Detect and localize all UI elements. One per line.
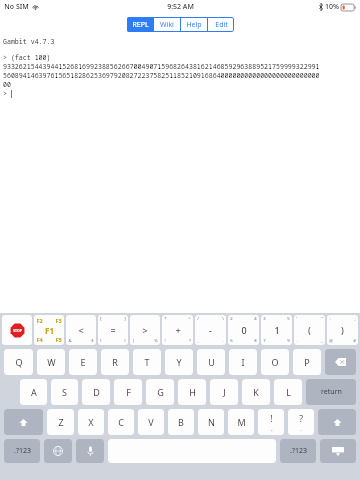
staticText: > (fact 100) [3, 53, 51, 62]
staticText: K [253, 386, 259, 398]
button[interactable]: * [162, 315, 193, 345]
button[interactable]: Z [47, 409, 74, 435]
staticText: L [286, 386, 291, 398]
button[interactable]: Backspace [325, 349, 356, 375]
staticText: ) [341, 324, 344, 336]
button[interactable]: 2 [228, 315, 259, 345]
button[interactable]: ' [294, 315, 325, 345]
staticText: ( [308, 324, 311, 336]
button[interactable]: | [130, 315, 160, 345]
button[interactable]: Wiki [154, 17, 180, 32]
button[interactable]: W [37, 349, 65, 375]
staticText: - [209, 324, 212, 336]
staticText: 6 [230, 338, 233, 344]
button[interactable]: M [228, 409, 254, 435]
button[interactable]: return [306, 379, 356, 405]
staticText: 5 [287, 316, 290, 322]
button[interactable]: H [178, 379, 206, 405]
staticText: " [321, 316, 323, 322]
staticText: ; [354, 316, 356, 322]
staticText: _ [321, 338, 323, 344]
button[interactable]: Function keys [34, 315, 64, 345]
button[interactable]: J [210, 379, 238, 405]
button[interactable]: Edit [208, 17, 234, 32]
staticText: ! [270, 413, 273, 425]
button[interactable]: N [198, 409, 224, 435]
staticText: E [80, 356, 86, 368]
button[interactable]: B [168, 409, 194, 435]
button[interactable]: [ [98, 315, 128, 345]
staticText: | [132, 338, 135, 344]
button[interactable]: C [108, 409, 134, 435]
button[interactable]: T [133, 349, 161, 375]
button[interactable]: G [146, 379, 174, 405]
staticText: & [68, 338, 72, 344]
button[interactable]: O [261, 349, 289, 375]
staticText: F3 [55, 317, 62, 324]
staticText: Help [186, 20, 202, 30]
staticText: > [3, 89, 11, 98]
staticText: ? [299, 413, 303, 425]
button[interactable]: K [242, 379, 270, 405]
button[interactable]: REPL [127, 17, 153, 32]
staticText: 0 [241, 324, 247, 336]
staticText: N [208, 416, 215, 428]
button[interactable]: Shift [4, 409, 43, 435]
button[interactable]: Q [4, 349, 33, 375]
staticText: T [144, 356, 150, 368]
button[interactable]: & [66, 315, 96, 345]
staticText: F2 [36, 317, 43, 324]
staticText: P [304, 356, 310, 368]
button[interactable]: / [195, 315, 226, 345]
button[interactable]: S [51, 379, 78, 405]
button[interactable]: P [293, 349, 321, 375]
staticText: X [88, 416, 94, 428]
button[interactable]: Dictate [76, 439, 104, 463]
staticText: $ [91, 338, 94, 344]
staticText: F [126, 386, 131, 398]
button[interactable]: 3 [261, 315, 292, 345]
button[interactable]: V [138, 409, 164, 435]
staticText: Q [15, 356, 23, 368]
staticText: % [154, 338, 158, 344]
button[interactable]: A [20, 379, 47, 405]
button[interactable]: ? [288, 409, 314, 435]
button[interactable]: F [114, 379, 142, 405]
staticText: . [296, 338, 298, 344]
button[interactable]: Help [181, 17, 207, 32]
staticText: .?123 [290, 446, 307, 456]
staticText: Edit [215, 20, 228, 30]
staticText: + [175, 324, 181, 336]
button[interactable]: D [82, 379, 110, 405]
staticText: REPL [132, 20, 149, 30]
staticText: , [271, 425, 273, 432]
button[interactable]: Shift [318, 409, 356, 435]
staticText: > [142, 324, 148, 336]
button[interactable]: I [229, 349, 257, 375]
staticText: 9:52 AM [167, 2, 194, 12]
button[interactable]: X [78, 409, 104, 435]
button[interactable]: Stop [2, 315, 32, 345]
button[interactable]: E [69, 349, 97, 375]
staticText: [ [100, 316, 102, 322]
staticText: ? [189, 338, 191, 344]
staticText: 00 [3, 80, 11, 89]
button[interactable]: ! [258, 409, 284, 435]
button[interactable]: L [274, 379, 302, 405]
staticText: H [189, 386, 196, 398]
button[interactable]: : [327, 315, 358, 345]
button[interactable]: Change keyboard [44, 439, 72, 463]
button[interactable]: Hide keyboard [320, 439, 356, 463]
button[interactable]: U [197, 349, 225, 375]
staticText: V [148, 416, 154, 428]
button[interactable]: Y [165, 349, 193, 375]
staticText: Gambit v4.7.3 [3, 37, 55, 46]
button[interactable]: .?123 [4, 439, 40, 463]
staticText: D [93, 386, 100, 398]
staticText: 5608941463976156518286253697920827223758… [3, 71, 320, 80]
button[interactable]: .?123 [280, 439, 316, 463]
staticText: 8 [254, 338, 257, 344]
staticText: ] [124, 316, 126, 322]
button[interactable]: R [101, 349, 129, 375]
